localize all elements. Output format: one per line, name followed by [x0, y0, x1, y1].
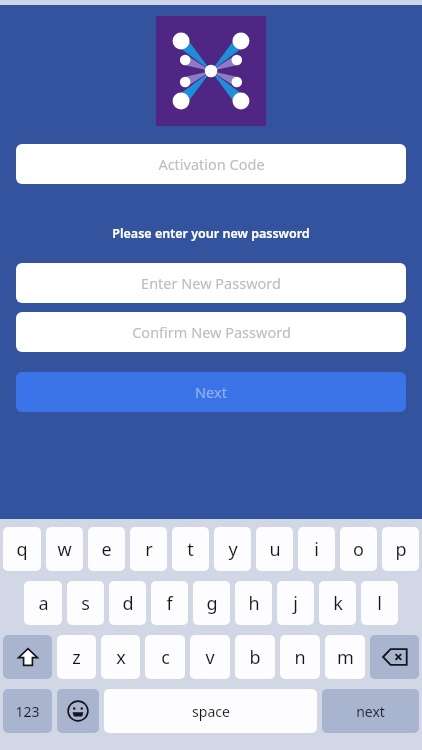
button[interactable]: 123: [3, 689, 52, 733]
button[interactable]: f: [151, 581, 188, 625]
button[interactable]: e: [88, 527, 125, 571]
button[interactable]: u: [256, 527, 293, 571]
button[interactable]: x: [101, 635, 140, 679]
staticText: o: [353, 537, 364, 562]
button[interactable]: w: [46, 527, 83, 571]
staticText: 123: [15, 702, 40, 721]
button[interactable]: Shift: [3, 635, 52, 679]
button[interactable]: a: [24, 581, 62, 625]
button[interactable]: y: [214, 527, 251, 571]
button[interactable]: z: [57, 635, 96, 679]
button[interactable]: r: [130, 527, 167, 571]
button[interactable]: l: [361, 581, 398, 625]
staticText: c: [161, 645, 170, 670]
button[interactable]: p: [382, 527, 419, 571]
staticText: d: [122, 591, 134, 616]
button[interactable]: j: [277, 581, 314, 625]
staticText: i: [314, 537, 319, 562]
staticText: q: [16, 537, 28, 562]
staticText: h: [248, 591, 260, 616]
button[interactable]: o: [340, 527, 377, 571]
staticText: s: [81, 591, 90, 616]
staticText: next: [356, 702, 385, 721]
staticText: t: [187, 537, 194, 562]
button[interactable]: Enter New Password: [16, 263, 406, 303]
staticText: x: [116, 645, 126, 670]
staticText: y: [228, 537, 238, 562]
button[interactable]: Next: [16, 372, 406, 412]
staticText: l: [377, 591, 382, 616]
staticText: Enter New Password: [141, 273, 281, 293]
button[interactable]: Backspace: [370, 635, 419, 679]
staticText: f: [166, 591, 173, 616]
button[interactable]: space: [104, 689, 317, 733]
button[interactable]: s: [67, 581, 104, 625]
button[interactable]: next: [322, 689, 419, 733]
button[interactable]: q: [3, 527, 41, 571]
button[interactable]: m: [325, 635, 365, 679]
button[interactable]: n: [280, 635, 320, 679]
staticText: g: [206, 591, 218, 616]
staticText: m: [337, 645, 354, 670]
staticText: Please enter your new password: [0, 225, 422, 242]
button[interactable]: k: [319, 581, 356, 625]
button[interactable]: i: [298, 527, 335, 571]
staticText: Next: [195, 382, 227, 402]
staticText: z: [72, 645, 81, 670]
button[interactable]: Activation Code: [16, 144, 406, 184]
button[interactable]: d: [109, 581, 146, 625]
staticText: n: [294, 645, 306, 670]
staticText: a: [38, 591, 49, 616]
button[interactable]: b: [235, 635, 275, 679]
staticText: v: [205, 645, 215, 670]
staticText: b: [249, 645, 261, 670]
staticText: u: [269, 537, 281, 562]
button[interactable]: c: [145, 635, 185, 679]
button[interactable]: Confirm New Password: [16, 312, 406, 352]
staticText: w: [57, 537, 72, 562]
button[interactable]: g: [193, 581, 230, 625]
staticText: Confirm New Password: [132, 322, 291, 342]
staticText: r: [145, 537, 153, 562]
staticText: space: [192, 702, 230, 721]
button[interactable]: v: [190, 635, 230, 679]
staticText: p: [395, 537, 407, 562]
staticText: e: [101, 537, 112, 562]
staticText: Activation Code: [158, 154, 265, 174]
staticText: j: [293, 591, 298, 616]
button[interactable]: t: [172, 527, 209, 571]
button[interactable]: h: [235, 581, 272, 625]
button[interactable]: Emoji: [57, 689, 99, 733]
staticText: k: [333, 591, 343, 616]
